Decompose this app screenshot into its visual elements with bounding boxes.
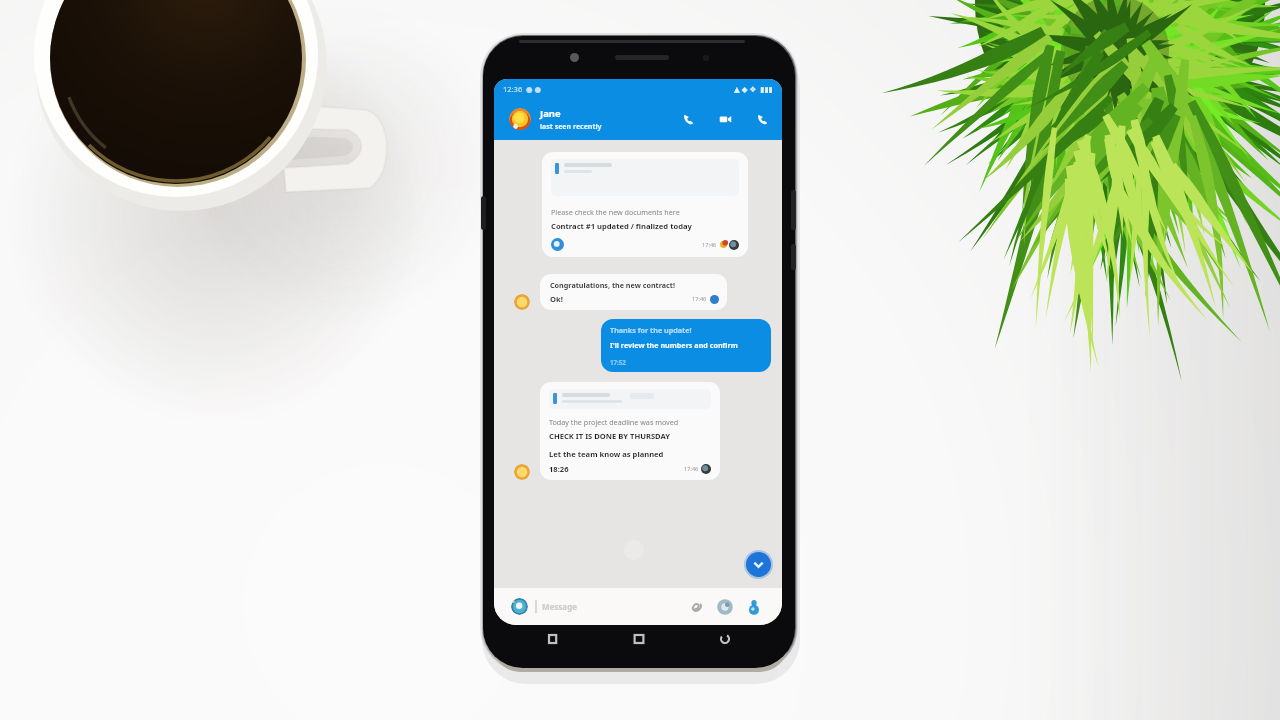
staticText: 12:36 ● ● (503, 84, 542, 94)
button[interactable]: Emoji (511, 598, 528, 615)
staticText: last seen recently (540, 122, 602, 132)
staticText: Jane (540, 107, 561, 120)
staticText: Ok! (550, 294, 563, 304)
button[interactable]: Attach (688, 599, 704, 615)
button[interactable]: Please check the new documents here (542, 152, 748, 257)
button[interactable]: Camera (717, 599, 733, 615)
button[interactable]: Home (629, 629, 649, 649)
staticText: CHECK IT IS DONE BY THURSDAY (549, 431, 671, 441)
staticText: Today the project deadline was moved (549, 417, 679, 427)
staticText: Let the team know as planned (549, 449, 664, 459)
button[interactable]: Contact avatar (509, 108, 531, 130)
staticText: 17:46 (702, 241, 717, 249)
staticText: Please check the new documents here (551, 207, 680, 217)
button[interactable]: Scroll to bottom (746, 552, 771, 577)
staticText: Message (542, 601, 577, 612)
staticText: Thanks for the update! (610, 325, 692, 335)
staticText: I'll review the numbers and confirm (610, 340, 738, 350)
staticText: 18:26 (549, 464, 569, 474)
button[interactable]: Sender avatar (514, 464, 530, 480)
button[interactable]: Voice message (746, 599, 762, 615)
button[interactable]: Congratulations, the new contract! (540, 274, 727, 310)
button[interactable]: Video call (717, 111, 734, 128)
staticText: 17:52 (610, 358, 626, 366)
button[interactable]: Call (680, 111, 697, 128)
button[interactable]: More options (754, 111, 771, 128)
button[interactable]: Recents (543, 629, 563, 649)
staticText: Contract #1 updated / finalized today (551, 221, 692, 231)
staticText: 17:46 (684, 465, 699, 473)
staticText: Congratulations, the new contract! (550, 280, 675, 290)
button[interactable]: Sender avatar (514, 294, 530, 310)
button[interactable]: Today the project deadline was moved (540, 382, 720, 480)
button[interactable]: Thanks for the update! (601, 319, 771, 372)
button[interactable]: Back (715, 629, 735, 649)
staticText: 17:46 (692, 295, 707, 303)
staticText: ▲ ◆ ❖ ▮▮▮ (734, 84, 773, 94)
button[interactable]: Jane (540, 107, 602, 132)
